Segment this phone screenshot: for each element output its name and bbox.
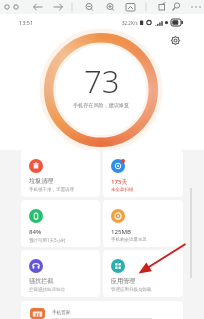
button[interactable]: 125MB [103, 200, 183, 247]
button[interactable]: 骚扰拦截 [21, 250, 100, 297]
button[interactable]: 手机管家 [21, 301, 183, 319]
staticText: 未全盘扫描 [111, 187, 134, 193]
staticText: 预计可用1天5小时 [29, 237, 66, 243]
staticText: 32.2K/s [122, 20, 138, 26]
staticText: 管理应用升级与卸载 [111, 287, 152, 293]
staticText: 手机剩余流量充足 [111, 237, 147, 243]
staticText: 13:51 [19, 19, 34, 26]
staticText: 73 [84, 60, 120, 102]
button[interactable]: Settings [168, 33, 182, 47]
button[interactable]: 应用管理 [103, 250, 183, 297]
staticText: 骚扰拦截 [29, 277, 54, 285]
button[interactable]: 垃圾清理 [21, 150, 100, 197]
staticText: 手机管家 [52, 310, 71, 316]
staticText: 手机存在风险，建议修复 [73, 102, 130, 108]
button[interactable]: 84% [21, 200, 100, 247]
staticText: 拦截骚扰电话短信 [29, 287, 65, 293]
staticText: 应用管理 [111, 277, 136, 285]
staticText: 175天 [111, 177, 128, 185]
button[interactable]: 175天 [103, 150, 183, 197]
staticText: 垃圾清理 [29, 177, 54, 185]
staticText: 手机很干净，无需清理 [29, 187, 74, 193]
staticText: 125MB [111, 227, 132, 235]
staticText: 84% [29, 227, 42, 235]
